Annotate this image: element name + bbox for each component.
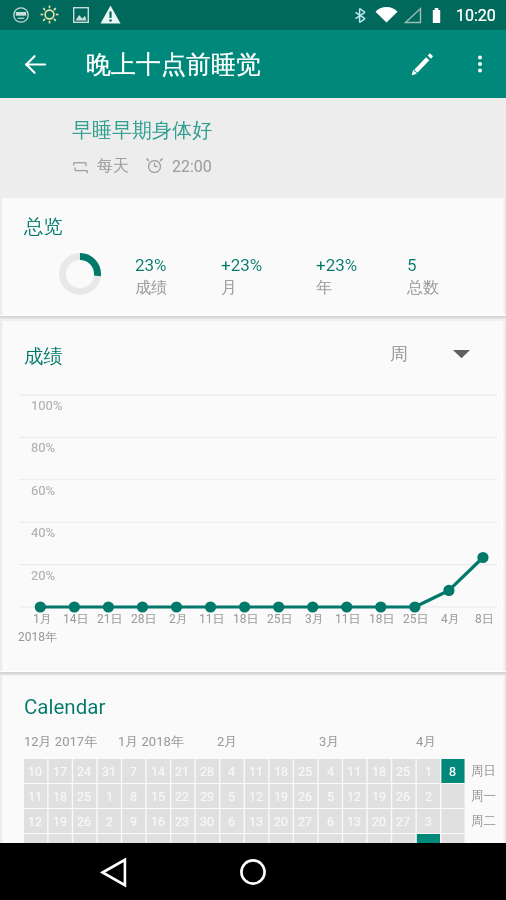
button[interactable]: 18 <box>368 759 391 783</box>
button[interactable]: 9 <box>122 809 145 833</box>
staticText: 13 <box>249 814 264 829</box>
staticText: 14日 <box>63 611 89 626</box>
staticText: 17 <box>53 764 68 779</box>
staticText: 12 <box>347 789 362 804</box>
staticText: 9 <box>130 814 138 829</box>
staticText: 1 <box>106 789 114 804</box>
staticText: 27 <box>396 814 411 829</box>
button[interactable]: 24 <box>73 759 96 783</box>
staticText: 29 <box>200 789 215 804</box>
button[interactable]: 11 <box>245 759 268 783</box>
staticText: 4月 <box>416 733 437 749</box>
button[interactable]: Back <box>91 849 137 895</box>
button[interactable]: 20 <box>368 809 391 833</box>
staticText: 8日 <box>475 611 494 626</box>
button[interactable]: 10 <box>24 759 47 783</box>
staticText: 16 <box>151 814 166 829</box>
staticText: 1月 2018年 <box>118 733 184 749</box>
staticText: 周日 <box>471 763 496 779</box>
button[interactable]: 29 <box>196 784 219 808</box>
button[interactable]: 25 <box>73 784 96 808</box>
button[interactable]: 26 <box>392 784 415 808</box>
button[interactable]: 1 <box>98 784 121 808</box>
button[interactable]: 18 <box>270 759 293 783</box>
button[interactable]: 19 <box>368 784 391 808</box>
button[interactable]: Back <box>11 40 59 88</box>
staticText: 10 <box>28 764 43 779</box>
button[interactable]: 4 <box>220 759 243 783</box>
staticText: 18 <box>53 789 68 804</box>
button[interactable]: 5 <box>319 784 342 808</box>
button[interactable]: 12 <box>343 784 366 808</box>
button[interactable]: 7 <box>122 759 145 783</box>
button[interactable]: 22 <box>171 784 194 808</box>
staticText: 4 <box>228 764 236 779</box>
button[interactable]: 15 <box>147 784 170 808</box>
button[interactable]: 11 <box>343 759 366 783</box>
staticText: 26 <box>298 789 313 804</box>
button[interactable]: 14 <box>147 759 170 783</box>
button[interactable]: 31 <box>98 759 121 783</box>
staticText: 21 <box>175 764 190 779</box>
staticText: 28日 <box>131 611 157 626</box>
staticText: 80% <box>31 440 56 455</box>
button[interactable]: 26 <box>294 784 317 808</box>
button[interactable]: 27 <box>392 809 415 833</box>
staticText: 25日 <box>267 611 293 626</box>
button[interactable]: 19 <box>49 809 72 833</box>
staticText: 7 <box>130 764 138 779</box>
button[interactable]: 12 <box>245 784 268 808</box>
staticText: 18日 <box>369 611 395 626</box>
staticText: 30 <box>200 814 215 829</box>
staticText: 21日 <box>97 611 123 626</box>
staticText: 2月 <box>217 733 238 749</box>
button[interactable]: 周 <box>390 337 470 371</box>
button[interactable]: 30 <box>196 809 219 833</box>
staticText: 每天 <box>97 156 129 176</box>
button[interactable]: 3 <box>417 809 440 833</box>
button[interactable]: 6 <box>220 809 243 833</box>
staticText: 19 <box>372 789 387 804</box>
button[interactable]: 19 <box>270 784 293 808</box>
button[interactable]: 27 <box>294 809 317 833</box>
button[interactable]: Edit <box>388 40 456 88</box>
staticText: 5 <box>228 789 236 804</box>
button[interactable]: 23 <box>171 809 194 833</box>
staticText: 23% <box>135 255 167 275</box>
button[interactable]: 25 <box>294 759 317 783</box>
button[interactable]: 28 <box>196 759 219 783</box>
staticText: 26 <box>77 814 92 829</box>
button[interactable]: 18 <box>49 784 72 808</box>
button[interactable]: 11 <box>24 784 47 808</box>
button[interactable]: 12 <box>24 809 47 833</box>
button[interactable]: 17 <box>49 759 72 783</box>
button[interactable]: 13 <box>343 809 366 833</box>
staticText: 20 <box>274 814 289 829</box>
staticText: 20% <box>31 568 56 583</box>
button[interactable]: 16 <box>147 809 170 833</box>
staticText: 23 <box>175 814 190 829</box>
staticText: 11 <box>347 764 362 779</box>
button[interactable]: More options <box>456 40 504 88</box>
button[interactable]: 8 <box>122 784 145 808</box>
button[interactable]: Home <box>230 849 276 895</box>
button[interactable]: 2 <box>417 784 440 808</box>
staticText: 18日 <box>233 611 259 626</box>
staticText: 27 <box>298 814 313 829</box>
staticText: 31 <box>102 764 117 779</box>
staticText: 25日 <box>403 611 429 626</box>
button[interactable]: 5 <box>220 784 243 808</box>
button[interactable]: 2 <box>98 809 121 833</box>
button[interactable]: 20 <box>270 809 293 833</box>
button[interactable]: 6 <box>319 809 342 833</box>
button[interactable]: 1 <box>417 759 440 783</box>
staticText: 20 <box>372 814 387 829</box>
staticText: 12月 2017年 <box>24 733 98 749</box>
button[interactable]: 26 <box>73 809 96 833</box>
button[interactable]: 25 <box>392 759 415 783</box>
button[interactable]: 8 <box>441 759 464 783</box>
button[interactable]: 4 <box>319 759 342 783</box>
staticText: 8 <box>130 789 138 804</box>
button[interactable]: 21 <box>171 759 194 783</box>
button[interactable]: 13 <box>245 809 268 833</box>
